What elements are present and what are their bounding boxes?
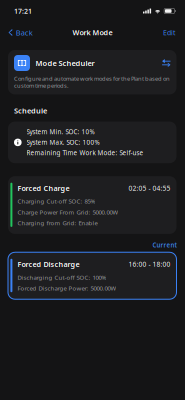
staticText: Discharging Cut-off SOC: 100% xyxy=(17,273,106,281)
staticText: Back xyxy=(16,27,33,38)
staticText: Forced Discharge xyxy=(17,259,79,269)
staticText: Schedule xyxy=(14,105,47,116)
button[interactable]: Forced Discharge xyxy=(8,252,176,299)
staticText: Forced Charge xyxy=(17,183,69,193)
staticText: Work Mode xyxy=(72,28,112,37)
staticText: System Min. SOC: 10% xyxy=(27,128,95,136)
staticText: 17:21 xyxy=(14,6,32,16)
button[interactable]: Edit xyxy=(156,23,185,42)
staticText: Forced Discharge Power: 5000.00W xyxy=(17,284,116,292)
button[interactable]: Mode Scheduler xyxy=(8,50,176,94)
staticText: Charging from Grid: Enable xyxy=(17,219,97,227)
staticText: Charging Cut-off SOC: 85% xyxy=(17,197,95,205)
staticText: 02:05 - 04:55 xyxy=(128,184,170,193)
button[interactable]: Back xyxy=(0,22,40,43)
staticText: System Max. SOC: 100% xyxy=(27,138,100,147)
staticText: Charge Power From Grid: 5000.00W xyxy=(17,208,118,216)
staticText: 16:00 - 18:00 xyxy=(128,260,170,269)
staticText: Current xyxy=(152,241,176,249)
button[interactable]: Forced Charge xyxy=(8,176,176,234)
staticText: Remaining Time Work Mode: Self-use xyxy=(27,149,144,157)
staticText: Mode Scheduler xyxy=(35,58,94,68)
staticText: Edit xyxy=(163,28,176,37)
staticText: Configure and automate work modes for th… xyxy=(14,74,170,89)
